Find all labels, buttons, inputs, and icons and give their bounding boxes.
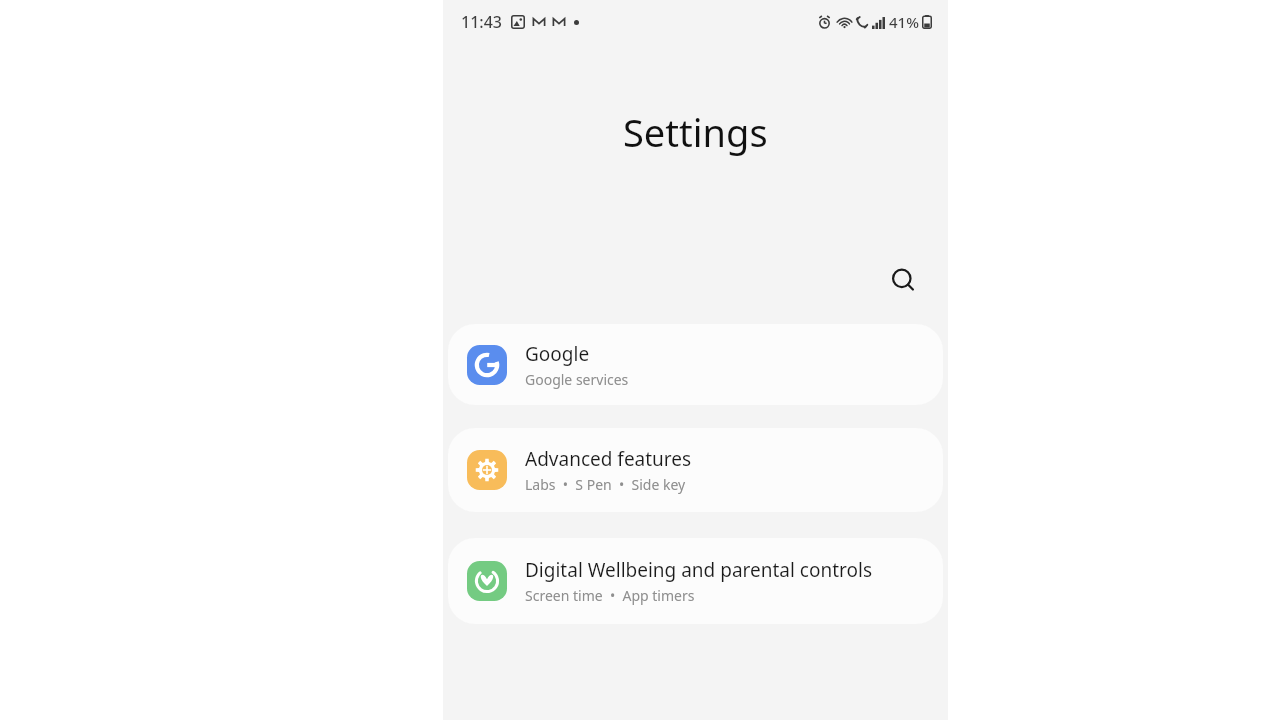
button[interactable]: Google	[448, 324, 943, 405]
staticText: Google	[525, 341, 590, 367]
button[interactable]: Advanced features	[448, 428, 943, 512]
staticText: 11:43	[461, 11, 502, 33]
staticText: Advanced features	[525, 446, 692, 472]
staticText: Settings	[623, 106, 768, 158]
staticText: Google services	[525, 370, 629, 389]
staticText: Digital Wellbeing and parental controls	[525, 557, 873, 583]
button[interactable]: Search settings	[880, 257, 928, 305]
staticText: Labs • S Pen • Side key	[525, 475, 686, 494]
staticText: 41%	[889, 12, 919, 32]
button[interactable]: Digital Wellbeing and parental controls	[448, 538, 943, 624]
staticText: Screen time • App timers	[525, 586, 695, 605]
